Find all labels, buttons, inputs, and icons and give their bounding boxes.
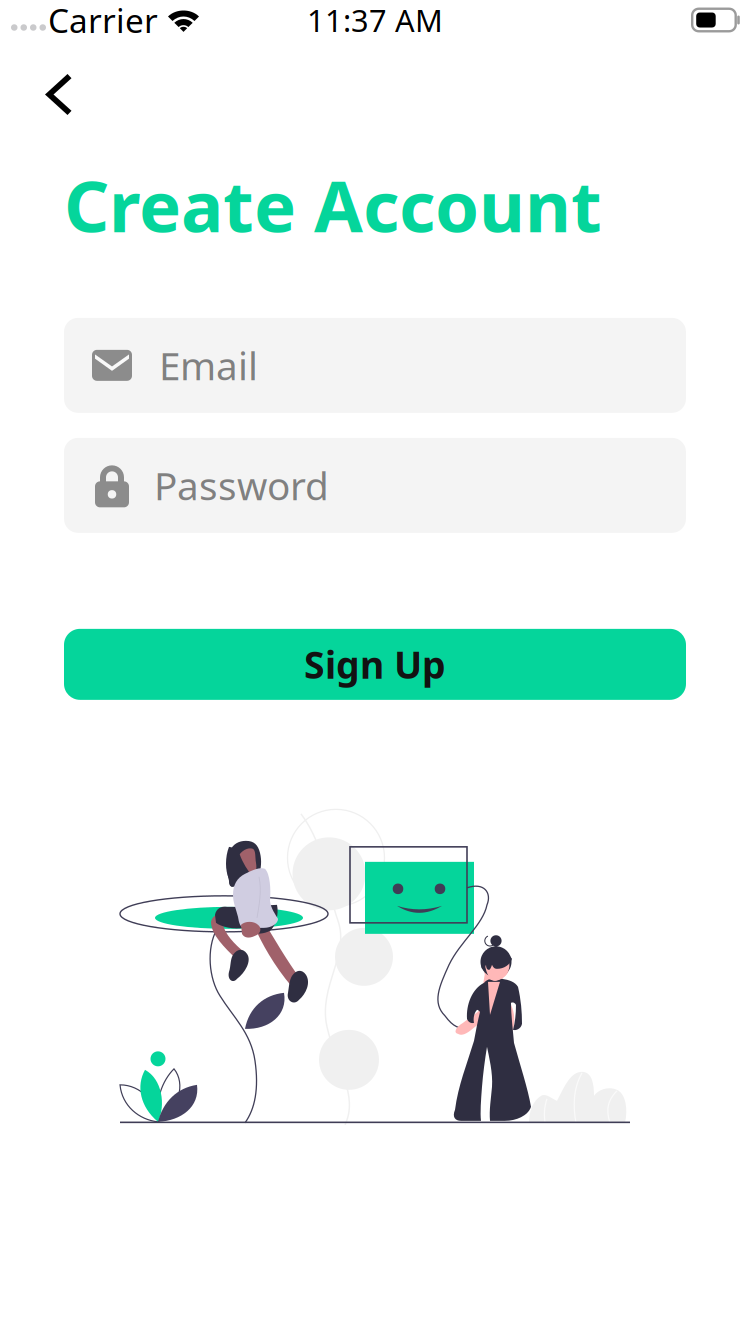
staticText: Email xyxy=(159,340,258,391)
staticText: Password xyxy=(154,460,329,511)
staticText: Create Account xyxy=(64,158,602,252)
staticText: Carrier xyxy=(48,0,158,42)
button[interactable]: Back xyxy=(0,40,96,127)
button[interactable]: Sign Up xyxy=(64,629,686,700)
staticText: Sign Up xyxy=(304,640,446,689)
staticText: 11:37 AM xyxy=(307,0,443,40)
